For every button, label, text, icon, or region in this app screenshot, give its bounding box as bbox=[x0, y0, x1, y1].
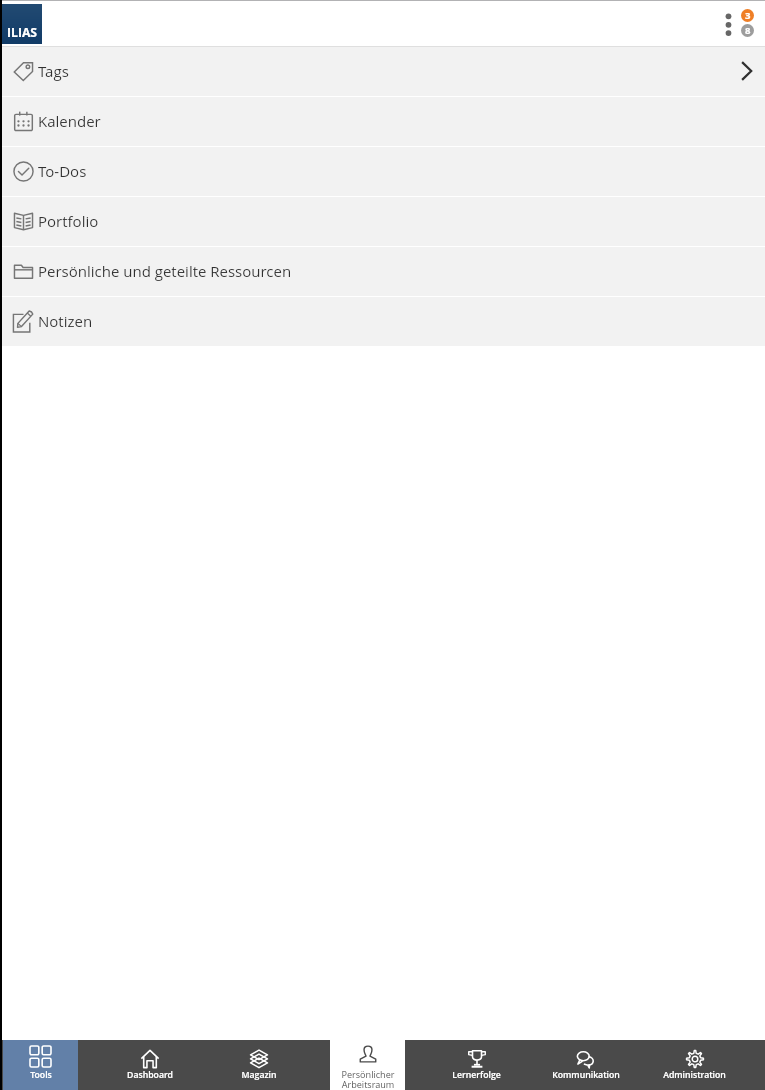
button[interactable]: Kalender bbox=[0, 97, 765, 146]
button[interactable]: Tags bbox=[0, 47, 765, 96]
staticText: 3 bbox=[745, 9, 751, 22]
staticText: Tags bbox=[38, 61, 69, 81]
button[interactable]: Administration bbox=[640, 1040, 749, 1090]
staticText: To-Dos bbox=[38, 161, 87, 181]
staticText: Notizen bbox=[38, 311, 93, 331]
button[interactable]: Lernerfolge bbox=[422, 1040, 531, 1090]
button[interactable]: Notifications bbox=[735, 3, 761, 43]
button[interactable]: Dashboard bbox=[95, 1040, 204, 1090]
button[interactable]: To-Dos bbox=[0, 147, 765, 196]
staticText: Dashboard bbox=[127, 1069, 173, 1081]
staticText: Magazin bbox=[241, 1069, 277, 1081]
staticText: Portfolio bbox=[38, 211, 99, 231]
button[interactable]: Persönlicher Arbeitsraum bbox=[313, 1040, 422, 1090]
staticText: Administration bbox=[663, 1069, 726, 1081]
staticText: ILIAS bbox=[7, 24, 38, 41]
staticText: Persönlicher Arbeitsraum bbox=[341, 1068, 395, 1090]
staticText: 8 bbox=[745, 24, 751, 37]
button[interactable]: Notizen bbox=[0, 297, 765, 346]
button[interactable]: Tools bbox=[0, 1040, 95, 1090]
staticText: Persönliche und geteilte Ressourcen bbox=[38, 261, 292, 281]
staticText: Kalender bbox=[38, 111, 101, 131]
staticText: Kommunikation bbox=[552, 1069, 620, 1081]
button[interactable]: More options bbox=[713, 1, 744, 45]
button[interactable]: Portfolio bbox=[0, 197, 765, 246]
staticText: Lernerfolge bbox=[452, 1069, 501, 1081]
button[interactable]: Kommunikation bbox=[531, 1040, 640, 1090]
staticText: Tools bbox=[30, 1069, 52, 1081]
button[interactable]: Persönliche und geteilte Ressourcen bbox=[0, 247, 765, 296]
button[interactable]: ILIAS bbox=[2, 4, 42, 44]
button[interactable]: Magazin bbox=[204, 1040, 313, 1090]
